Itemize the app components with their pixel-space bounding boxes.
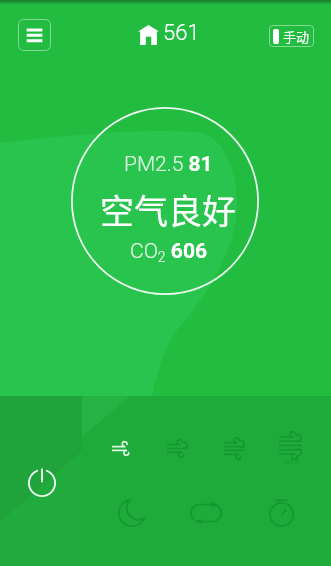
button[interactable]: Menu: [18, 19, 51, 51]
button[interactable]: Power: [0, 396, 82, 566]
staticText: 手动: [283, 27, 310, 46]
button[interactable]: Fan speed 1: [95, 421, 151, 475]
button[interactable]: Fan speed 4: [263, 421, 319, 475]
staticText: PM2.5 81: [124, 152, 213, 177]
button[interactable]: 手动: [269, 25, 314, 47]
button[interactable]: Timer: [250, 485, 312, 541]
button[interactable]: Fan speed 2: [150, 421, 206, 475]
button[interactable]: Fan speed 3: [207, 421, 263, 475]
button[interactable]: Auto mode: [175, 485, 237, 541]
staticText: 超大风: [284, 458, 299, 464]
staticText: 561: [163, 20, 200, 46]
staticText: 空气良好: [100, 185, 236, 234]
staticText: CO2 606: [130, 239, 207, 266]
button[interactable]: Sleep mode: [101, 485, 163, 541]
